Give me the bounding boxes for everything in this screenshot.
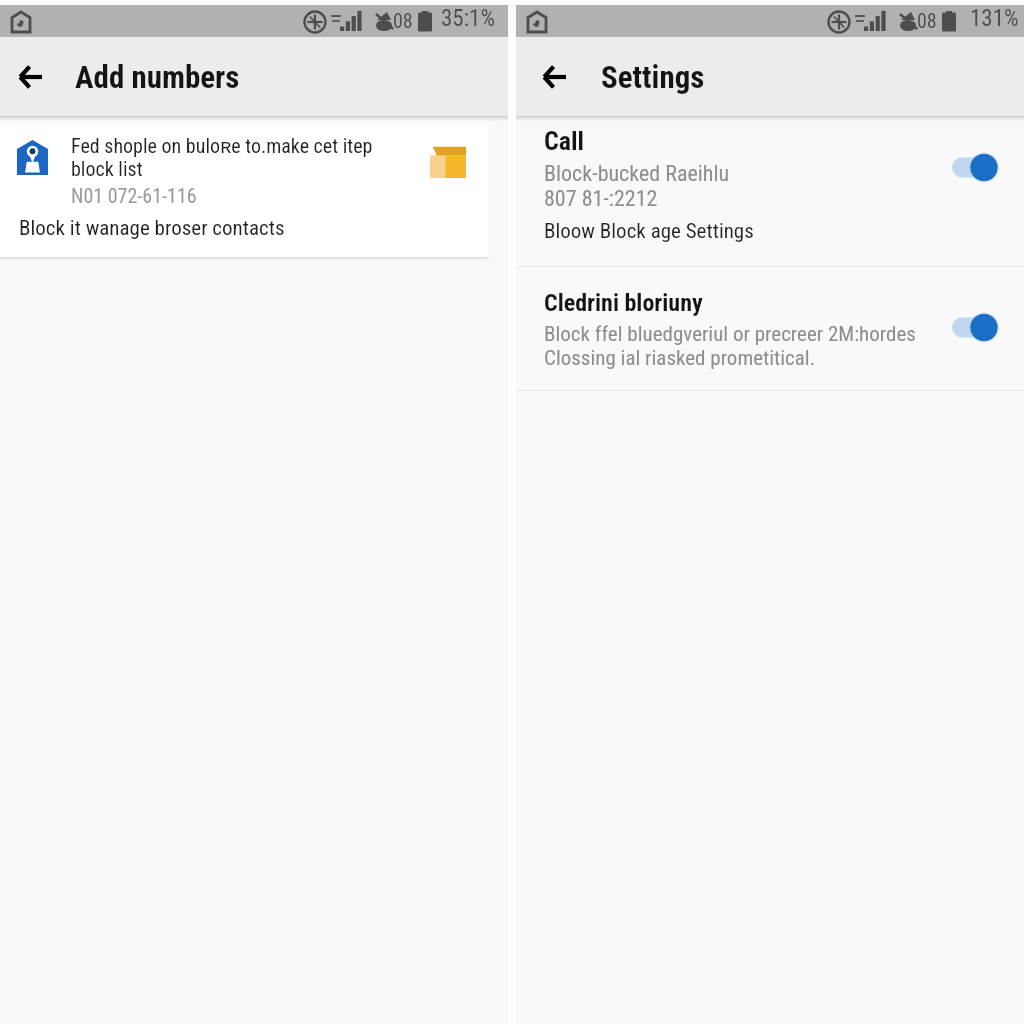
staticText: 35:1%	[441, 5, 495, 32]
button[interactable]: Back	[525, 48, 583, 106]
staticText: Clossing ial riasked prometitical.	[544, 346, 816, 371]
staticText: Add numbers	[75, 59, 240, 95]
button[interactable]: Call	[516, 121, 1024, 266]
button[interactable]: Cledrini bloriuny	[516, 267, 1024, 390]
button[interactable]: Back	[1, 48, 59, 106]
staticText: 08	[393, 9, 413, 32]
staticText: Block-bucked Raeihlu	[544, 161, 730, 187]
staticText: 08	[917, 9, 937, 32]
staticText: Fed shople on buloʀe to.make cet itep bl…	[71, 132, 383, 181]
staticText: 807 81-:2212	[544, 186, 658, 212]
button[interactable]: Fed shople on buloʀe to.make cet itep bl…	[0, 126, 489, 257]
staticText: Cledrini bloriuny	[544, 289, 703, 317]
staticText: N01 072-61-116	[71, 184, 197, 207]
button[interactable]: Block unknown callers	[952, 153, 998, 182]
staticText: 131%	[970, 5, 1019, 32]
staticText: Block ffel bluedgveriul or precreer 2M:h…	[544, 322, 916, 347]
button[interactable]: Block message senders	[952, 313, 998, 342]
staticText: Settings	[601, 59, 705, 95]
staticText: Block it wanage broser contacts	[19, 216, 285, 241]
staticText: Bloow Block age Settings	[544, 219, 754, 244]
button[interactable]: Block it wanage broser contacts	[0, 206, 489, 250]
staticText: Call	[544, 126, 585, 156]
